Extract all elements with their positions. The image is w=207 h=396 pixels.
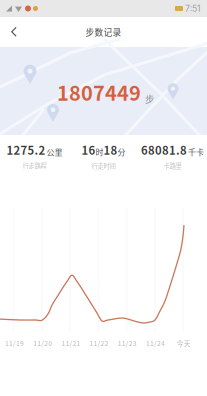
staticText: 18: [103, 142, 117, 158]
staticText: 今天: [177, 338, 191, 348]
staticText: 分: [117, 146, 125, 158]
staticText: 11/22: [90, 338, 109, 348]
staticText: 11/23: [118, 338, 137, 348]
staticText: 11/21: [61, 338, 80, 348]
staticText: 11/20: [33, 338, 52, 348]
staticText: 步: [145, 92, 154, 105]
staticText: 68081.8: [141, 142, 187, 158]
staticText: 步数记录: [85, 26, 121, 38]
staticText: 7:51: [185, 3, 201, 14]
staticText: 11/24: [146, 338, 165, 348]
staticText: 公里: [46, 146, 62, 158]
staticText: 11/19: [5, 338, 24, 348]
staticText: 1807449: [57, 77, 141, 106]
staticText: 1275.2: [6, 142, 45, 158]
staticText: 时: [95, 146, 103, 158]
staticText: 卡路里: [163, 161, 181, 170]
staticText: 行走路程: [22, 161, 46, 170]
staticText: 千卡: [188, 146, 204, 158]
staticText: 16: [81, 142, 95, 158]
staticText: 行走时间: [91, 161, 115, 170]
button[interactable]: Back: [0, 17, 28, 47]
